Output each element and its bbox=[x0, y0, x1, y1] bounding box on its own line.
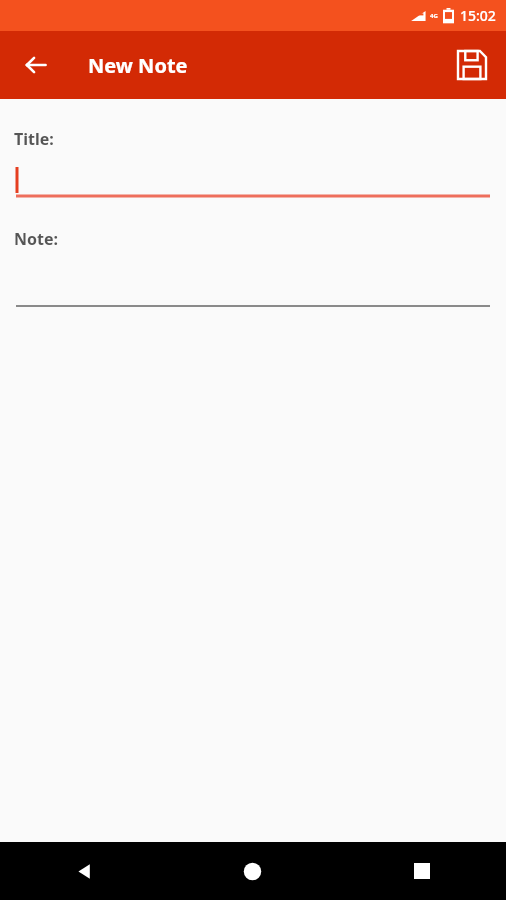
button[interactable]: Recent apps bbox=[337, 842, 506, 900]
button[interactable]: Back bbox=[0, 842, 168, 900]
button[interactable]: Back bbox=[13, 42, 59, 88]
button[interactable] bbox=[0, 164, 506, 199]
staticText: Title: bbox=[14, 128, 54, 150]
staticText: 15:02 bbox=[460, 6, 496, 25]
button[interactable]: Home bbox=[168, 842, 337, 900]
button[interactable]: Save bbox=[448, 41, 496, 89]
button[interactable] bbox=[0, 264, 506, 309]
staticText: 4G bbox=[430, 12, 438, 20]
staticText: New Note bbox=[88, 52, 188, 79]
staticText: Note: bbox=[14, 228, 59, 250]
